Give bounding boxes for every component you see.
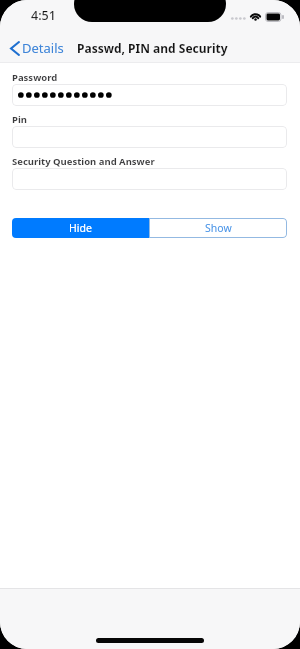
staticText: Show — [205, 221, 232, 235]
staticText: Security Question and Answer — [12, 155, 155, 168]
button[interactable]: Show — [149, 218, 287, 238]
staticText: Passwd, PIN and Security — [77, 40, 228, 56]
button[interactable] — [12, 168, 287, 190]
staticText: Details — [22, 39, 64, 57]
staticText: Password — [12, 71, 58, 84]
button[interactable] — [12, 126, 287, 148]
staticText: 4:51 — [31, 7, 56, 24]
other: Back — [10, 41, 20, 56]
button[interactable] — [12, 84, 287, 106]
staticText: Pin — [12, 113, 27, 126]
button[interactable]: Back — [0, 32, 72, 60]
staticText: Hide — [69, 221, 92, 235]
button[interactable]: Hide — [12, 218, 149, 238]
